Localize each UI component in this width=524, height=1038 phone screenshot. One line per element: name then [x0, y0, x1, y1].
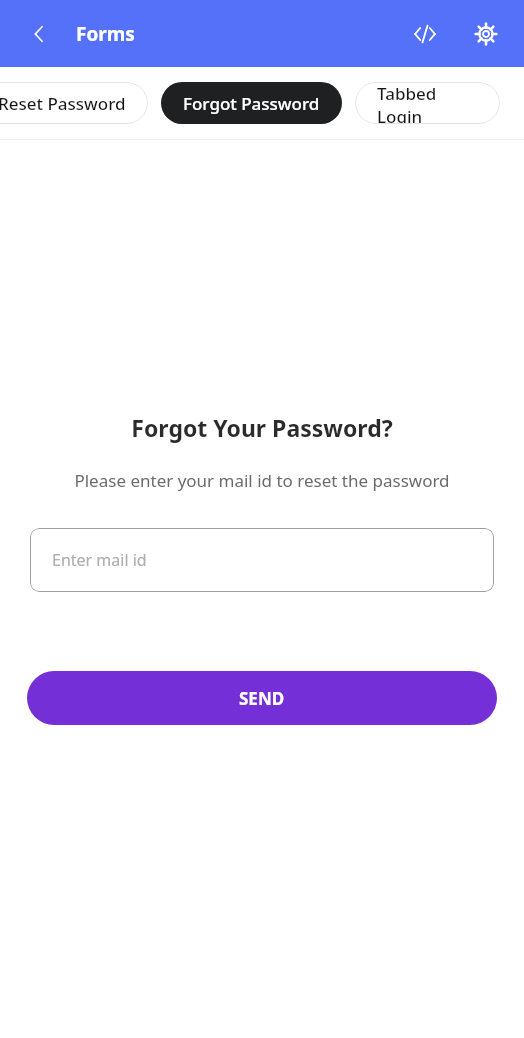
button[interactable]: SEND [27, 671, 497, 725]
button[interactable]: Back [18, 12, 62, 56]
staticText: Forgot Password [183, 92, 320, 115]
staticText: Forgot Your Password? [131, 412, 393, 443]
staticText: Tabbed Login [377, 82, 478, 124]
button[interactable]: Settings [464, 12, 508, 56]
button[interactable]: Forgot Password [161, 82, 342, 124]
button[interactable]: Reset Password [0, 82, 148, 124]
staticText: Forms [76, 21, 135, 47]
button[interactable]: Enter mail id [30, 528, 494, 592]
staticText: Enter mail id [52, 549, 147, 571]
staticText: SEND [239, 687, 285, 710]
button[interactable]: View code [402, 11, 448, 57]
staticText: Reset Password [0, 92, 126, 115]
staticText: Please enter your mail id to reset the p… [74, 469, 450, 492]
button[interactable]: Tabbed Login [355, 82, 500, 124]
